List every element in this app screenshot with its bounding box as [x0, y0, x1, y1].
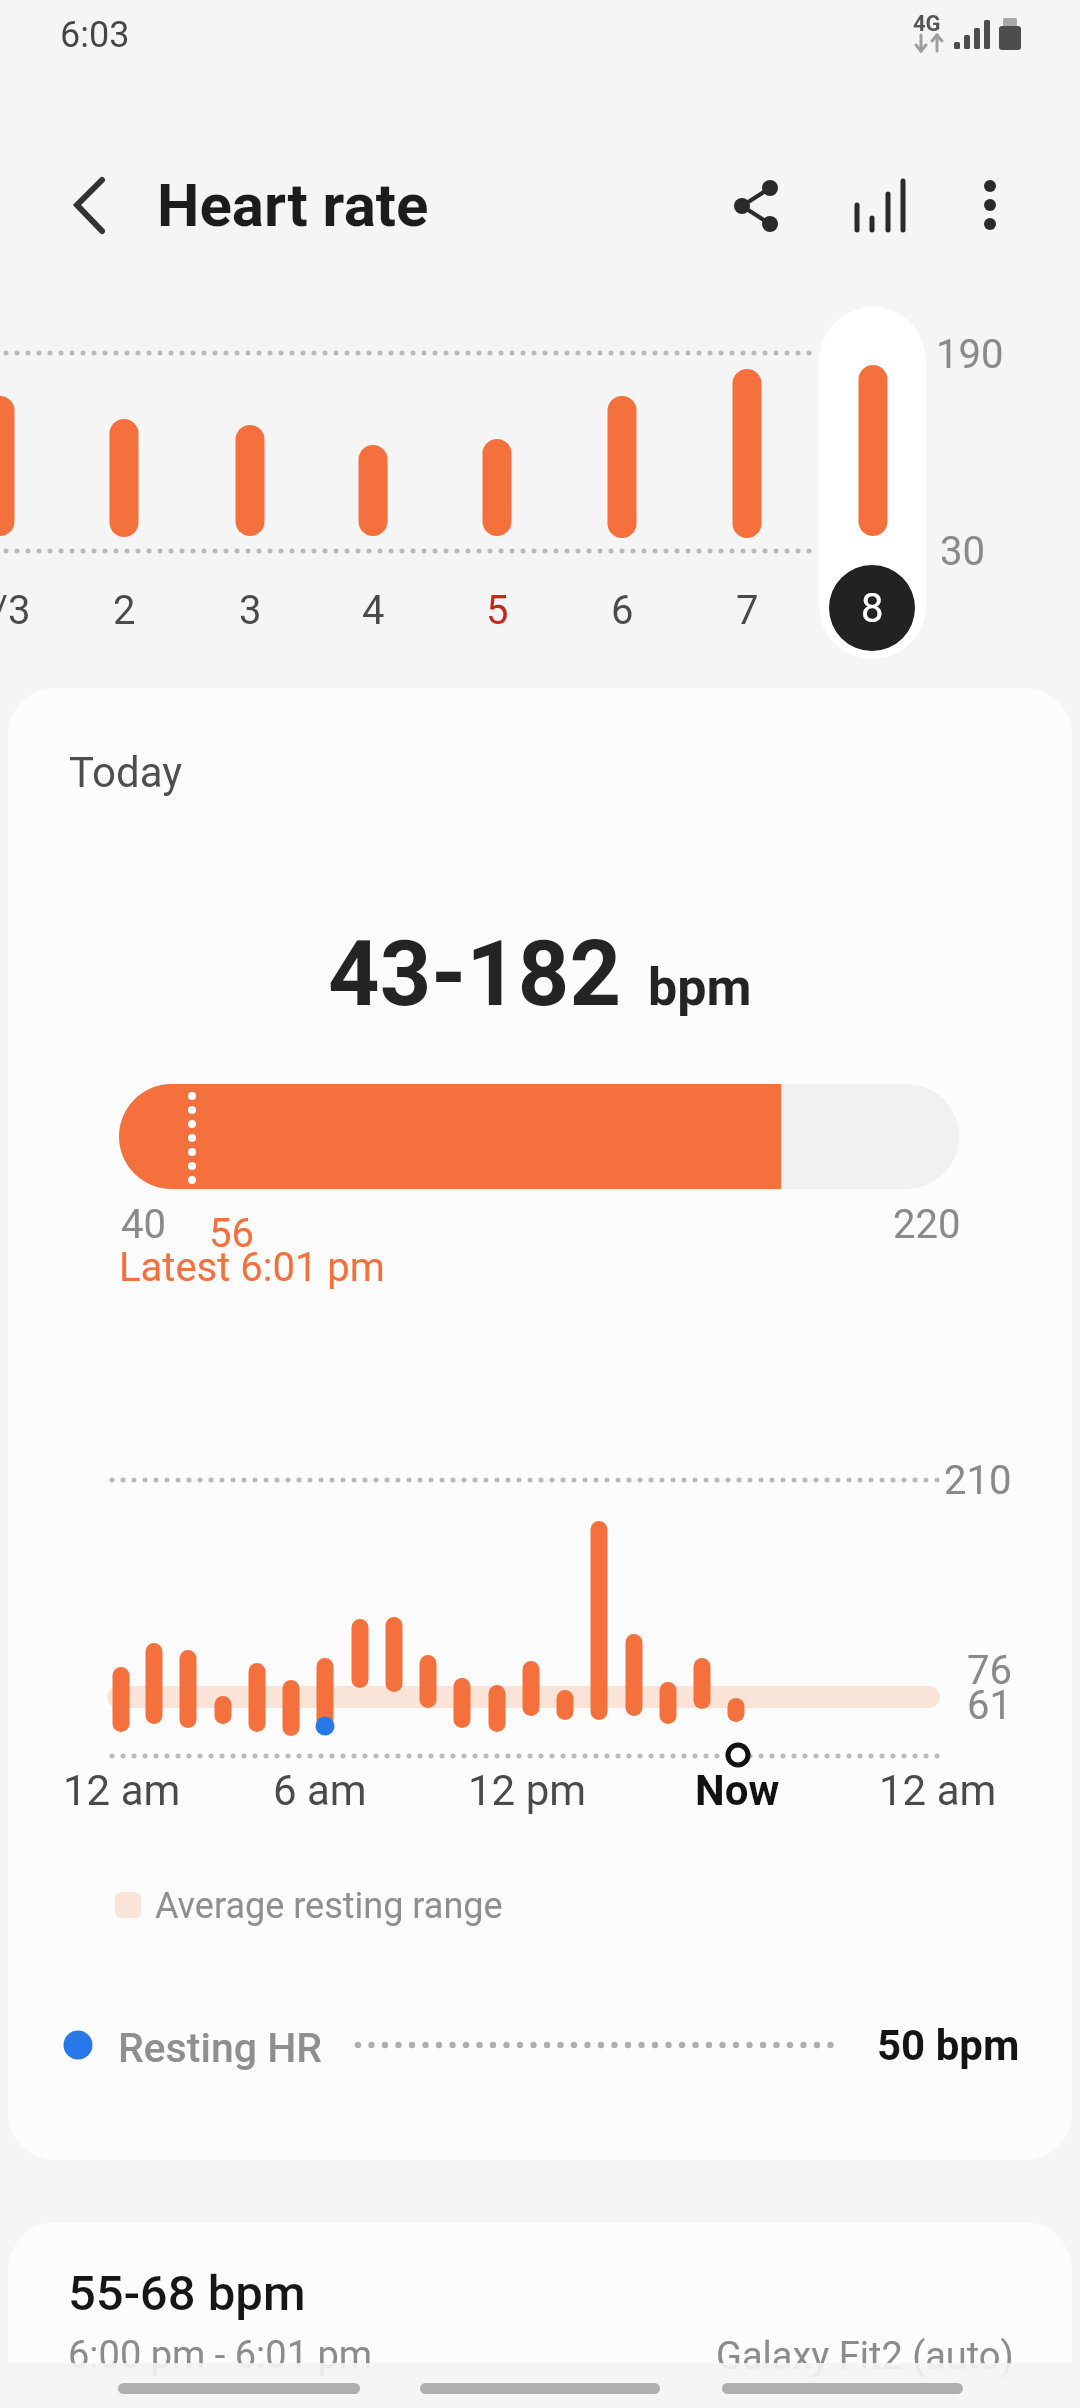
staticText: bpm	[648, 957, 752, 1018]
button[interactable]	[840, 166, 920, 246]
staticText: 56	[209, 1210, 254, 1257]
button[interactable]	[8, 2222, 1072, 2408]
staticText: 4	[362, 587, 385, 634]
staticText: 2	[113, 587, 136, 634]
staticText: 3	[239, 587, 262, 634]
staticText: Resting HR	[118, 2024, 322, 2072]
staticText: Heart rate	[157, 170, 429, 240]
staticText: 1/3	[0, 587, 31, 634]
button[interactable]	[570, 330, 674, 660]
staticText: 55-68 bpm	[68, 2265, 306, 2322]
staticText: 12 pm	[468, 1766, 587, 1815]
staticText: 6:03	[60, 14, 130, 56]
staticText: 76	[967, 1647, 1012, 1694]
staticText: Average resting range	[155, 1885, 503, 1927]
staticText: 12 am	[879, 1766, 997, 1815]
staticText: 12 am	[63, 1766, 181, 1815]
staticText: 6	[611, 587, 634, 634]
staticText: 43-182	[328, 922, 622, 1027]
staticText: 7	[736, 587, 759, 634]
staticText: Now	[695, 1766, 780, 1815]
staticText: Today	[69, 748, 183, 797]
button[interactable]	[321, 330, 425, 660]
staticText: 190	[936, 331, 1004, 378]
staticText: 50 bpm	[877, 2021, 1020, 2070]
staticText: 210	[944, 1457, 1012, 1504]
staticText: 40	[121, 1201, 166, 1248]
button[interactable]	[819, 330, 923, 660]
staticText: 6 am	[273, 1766, 367, 1815]
staticText: 6:00 pm - 6:01 pm	[68, 2333, 373, 2378]
staticText: 4G	[913, 11, 941, 37]
button[interactable]	[446, 330, 550, 660]
button[interactable]	[950, 166, 1030, 246]
button[interactable]	[52, 165, 132, 245]
staticText: Latest 6:01 pm	[119, 1244, 385, 1291]
staticText: 5	[486, 587, 509, 634]
button[interactable]	[197, 330, 301, 660]
staticText: 30	[940, 528, 985, 575]
staticText: 61	[967, 1682, 1012, 1729]
staticText: Galaxy Fit2 (auto)	[716, 2334, 1014, 2379]
staticText: 220	[893, 1201, 961, 1248]
button[interactable]	[0, 330, 52, 660]
button[interactable]	[72, 330, 176, 660]
staticText: 8	[861, 585, 884, 632]
button[interactable]	[695, 330, 799, 660]
button[interactable]	[716, 166, 796, 246]
